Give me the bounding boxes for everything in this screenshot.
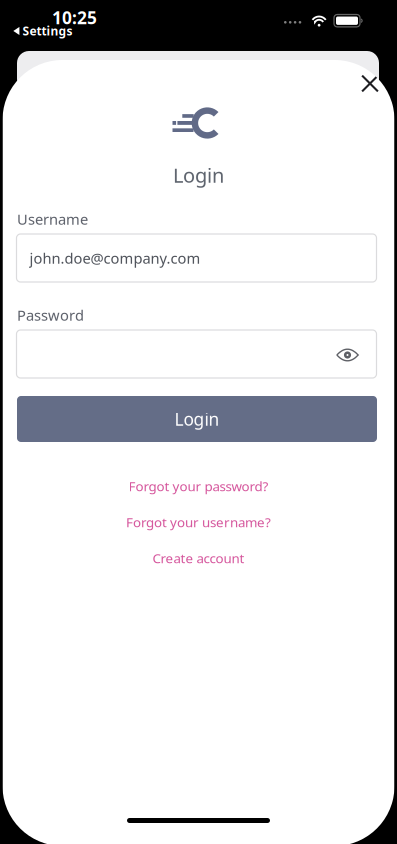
button[interactable]: Show password <box>327 335 367 375</box>
staticText: Username <box>17 209 88 229</box>
staticText: Create account <box>152 549 244 567</box>
button[interactable]: Create account <box>2 547 394 569</box>
button[interactable]: Login <box>17 396 377 442</box>
staticText: Forgot your password? <box>128 477 268 495</box>
button[interactable]: Close <box>348 61 392 105</box>
button[interactable]: Forgot your username? <box>2 511 394 533</box>
staticText: Forgot your username? <box>126 513 271 531</box>
staticText: john.doe@company.com <box>29 248 200 268</box>
staticText: Password <box>17 305 84 325</box>
staticText: Settings <box>22 23 72 39</box>
staticText: Login <box>173 162 224 188</box>
staticText: 10:25 <box>52 6 97 29</box>
button[interactable]: Forgot your password? <box>2 475 394 497</box>
staticText: Login <box>174 407 219 430</box>
